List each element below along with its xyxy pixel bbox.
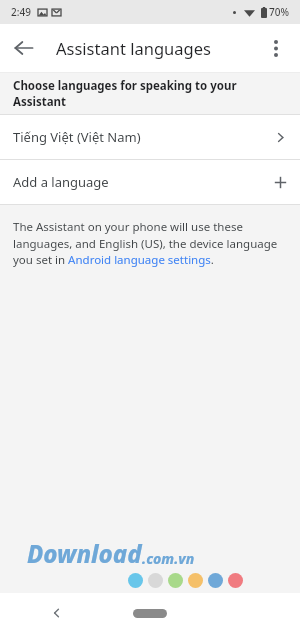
- staticText: Tiếng Việt (Việt Nam): [13, 128, 141, 146]
- button[interactable]: More options: [252, 24, 300, 72]
- staticText: Download: [27, 537, 142, 570]
- staticText: 70%: [269, 5, 289, 19]
- staticText: Assistant languages: [56, 37, 211, 59]
- button[interactable]: Home: [133, 609, 167, 618]
- button[interactable]: Back: [42, 598, 72, 628]
- staticText: Choose languages for speaking to your As…: [13, 78, 287, 110]
- button[interactable]: Tiếng Việt (Việt Nam): [0, 115, 300, 159]
- button[interactable]: Add a language: [0, 160, 300, 204]
- staticText: 2:49: [11, 5, 31, 19]
- staticText: The Assistant on your phone will use the…: [13, 219, 287, 267]
- button[interactable]: Back: [0, 24, 48, 72]
- staticText: Add a language: [13, 173, 109, 191]
- staticText: .com.vn: [142, 549, 195, 568]
